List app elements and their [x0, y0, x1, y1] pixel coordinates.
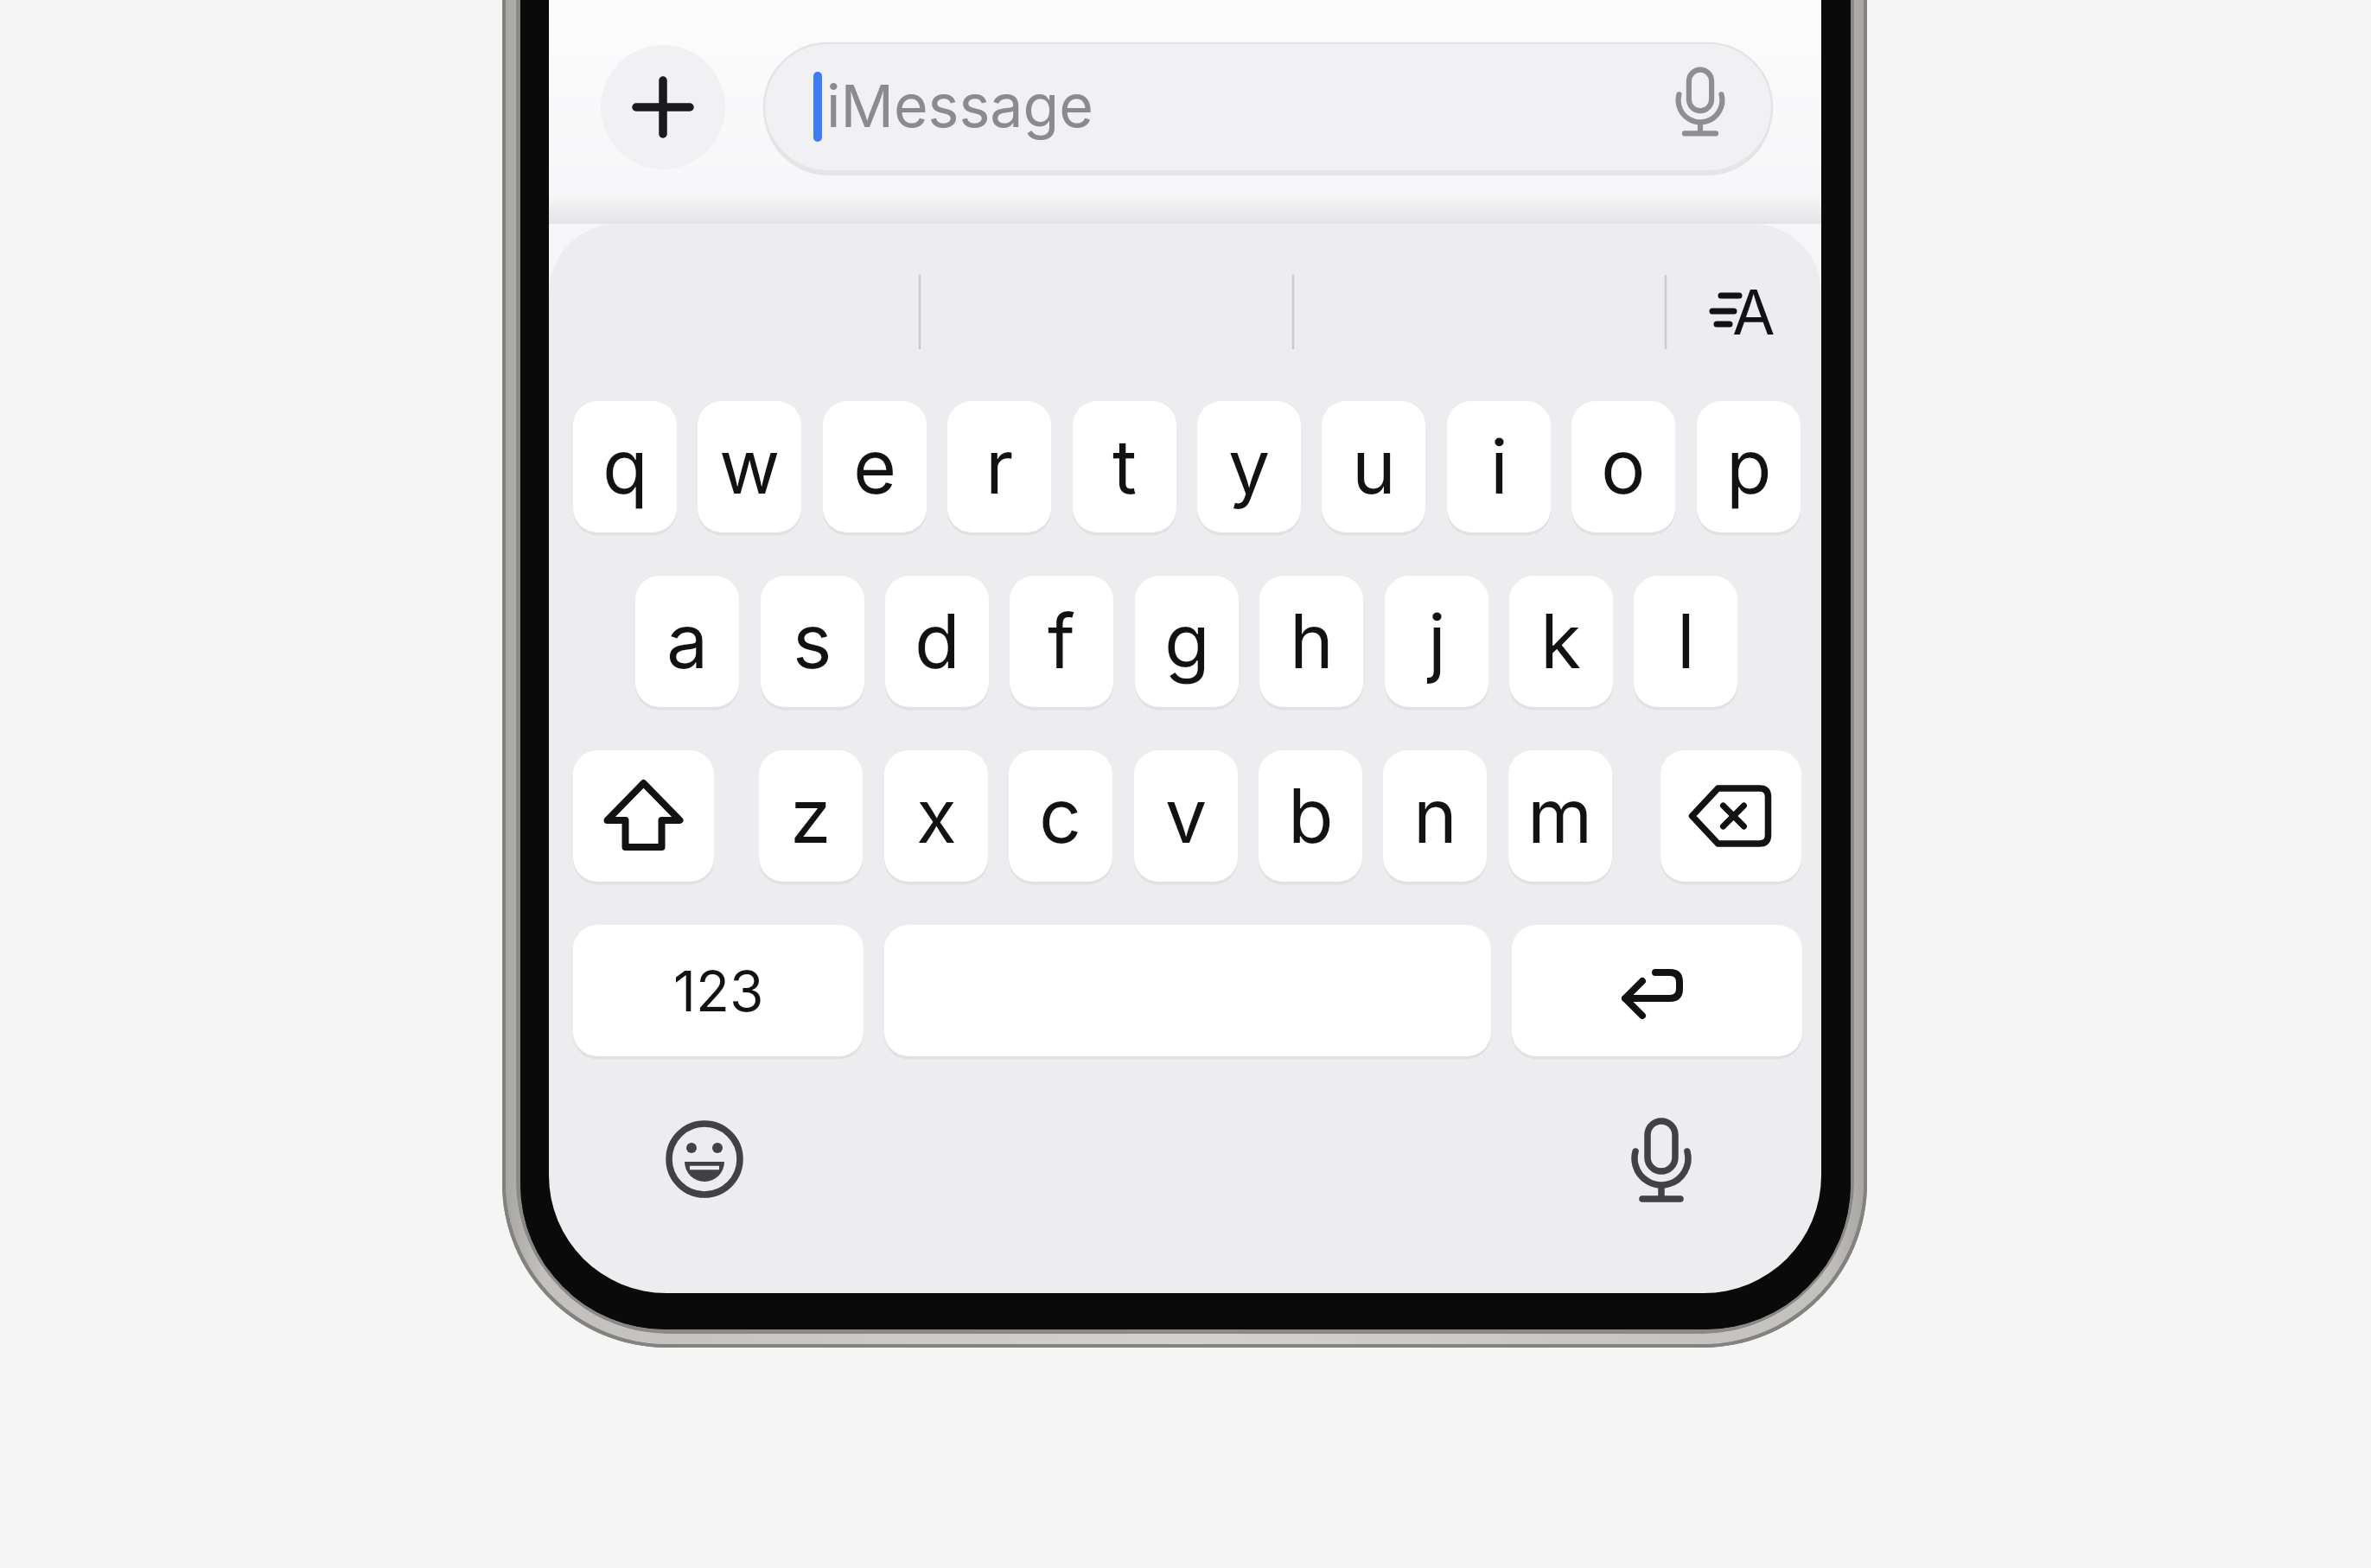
button[interactable]: d — [885, 576, 989, 707]
staticText: x — [916, 771, 957, 861]
button[interactable]: j — [1385, 576, 1488, 707]
staticText: w — [719, 422, 781, 512]
button[interactable]: w — [698, 401, 801, 532]
staticText: u — [1352, 422, 1396, 512]
button[interactable]: p — [1697, 401, 1801, 532]
staticText: r — [985, 422, 1014, 512]
button[interactable]: o — [1571, 401, 1675, 532]
button[interactable]: x — [884, 750, 988, 882]
button[interactable] — [651, 1106, 758, 1213]
staticText: y — [1228, 422, 1271, 512]
button[interactable]: c — [1009, 750, 1112, 882]
staticText: h — [1290, 596, 1334, 686]
button[interactable]: 123 — [573, 925, 864, 1056]
staticText: d — [915, 596, 960, 686]
button[interactable]: y — [1197, 401, 1301, 532]
button[interactable]: s — [761, 576, 864, 707]
staticText: j — [1428, 596, 1446, 686]
staticText: c — [1039, 771, 1082, 861]
button[interactable]: l — [1634, 576, 1737, 707]
staticText: v — [1165, 771, 1208, 861]
button[interactable] — [601, 45, 725, 169]
staticText: g — [1164, 596, 1210, 686]
staticText: n — [1413, 771, 1457, 861]
staticText: k — [1540, 596, 1582, 686]
staticText: m — [1527, 771, 1593, 861]
button[interactable]: f — [1010, 576, 1113, 707]
staticText: a — [666, 596, 709, 686]
staticText: 123 — [673, 958, 764, 1024]
button[interactable] — [1660, 750, 1801, 882]
button[interactable]: v — [1134, 750, 1238, 882]
staticText: b — [1288, 771, 1334, 861]
button[interactable]: r — [947, 401, 1051, 532]
button[interactable]: t — [1073, 401, 1176, 532]
button[interactable]: i — [1447, 401, 1551, 532]
button[interactable]: iMessage — [764, 43, 1772, 171]
staticText: o — [1601, 422, 1646, 512]
staticText: z — [790, 771, 832, 861]
button[interactable] — [573, 750, 714, 882]
button[interactable]: z — [759, 750, 863, 882]
staticText: i — [1490, 422, 1508, 512]
button[interactable]: e — [823, 401, 927, 532]
button[interactable]: g — [1135, 576, 1239, 707]
staticText: A — [1732, 274, 1775, 349]
button[interactable]: u — [1322, 401, 1425, 532]
staticText: e — [853, 422, 897, 512]
button[interactable]: q — [573, 401, 677, 532]
button[interactable]: h — [1259, 576, 1363, 707]
staticText: f — [1048, 596, 1075, 686]
button[interactable]: n — [1383, 750, 1487, 882]
staticText: s — [793, 596, 832, 686]
staticText: q — [602, 422, 648, 512]
button[interactable] — [1512, 925, 1802, 1056]
button[interactable]: m — [1508, 750, 1612, 882]
button[interactable]: a — [635, 576, 739, 707]
button[interactable]: k — [1509, 576, 1613, 707]
staticText: p — [1726, 422, 1772, 512]
button[interactable]: A — [1707, 268, 1798, 354]
staticText: iMessage — [826, 70, 1093, 141]
staticText: t — [1112, 422, 1138, 512]
button[interactable] — [1608, 1107, 1715, 1214]
staticText: l — [1677, 596, 1695, 686]
button[interactable]: b — [1259, 750, 1362, 882]
